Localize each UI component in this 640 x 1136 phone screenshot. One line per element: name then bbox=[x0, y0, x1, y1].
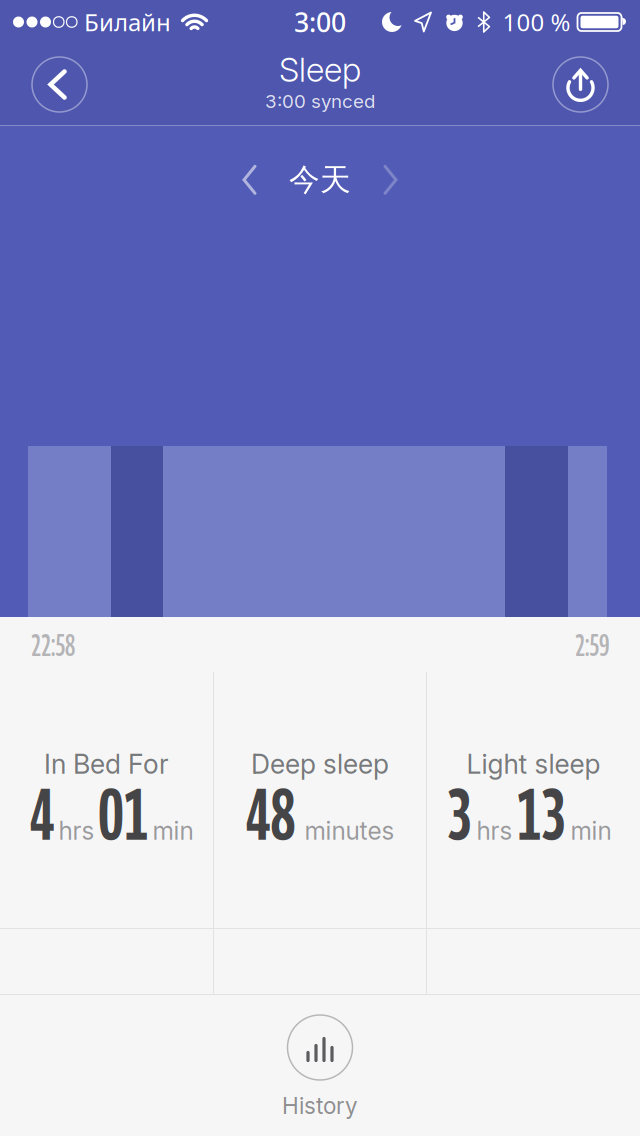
staticText: History bbox=[282, 1092, 358, 1119]
staticText: In Bed For bbox=[44, 748, 169, 780]
staticText: 48 bbox=[245, 770, 295, 856]
staticText: 今天 bbox=[289, 161, 351, 199]
button[interactable]: Back bbox=[32, 57, 87, 112]
staticText: 4 bbox=[29, 770, 54, 856]
staticText: Sleep bbox=[279, 49, 361, 90]
staticText: 100 % bbox=[502, 6, 570, 38]
staticText: Билайн bbox=[84, 6, 171, 38]
staticText: 22:58 bbox=[31, 626, 75, 663]
staticText: minutes bbox=[304, 816, 394, 846]
staticText: min bbox=[570, 816, 611, 846]
button[interactable]: Share bbox=[553, 57, 608, 112]
staticText: 13 bbox=[516, 770, 566, 856]
staticText: 3:00 bbox=[294, 4, 346, 40]
staticText: Deep sleep bbox=[251, 748, 389, 780]
button[interactable]: Previous day bbox=[244, 166, 255, 193]
button[interactable]: History bbox=[282, 1015, 358, 1119]
staticText: Light sleep bbox=[466, 748, 600, 780]
staticText: 2:59 bbox=[575, 626, 609, 663]
staticText: min bbox=[152, 816, 193, 846]
button[interactable]: Next day bbox=[385, 166, 396, 193]
staticText: hrs bbox=[58, 816, 94, 846]
staticText: hrs bbox=[476, 816, 512, 846]
staticText: 3 bbox=[447, 770, 472, 856]
staticText: 01 bbox=[98, 770, 148, 856]
staticText: 3:00 synced bbox=[265, 90, 375, 112]
